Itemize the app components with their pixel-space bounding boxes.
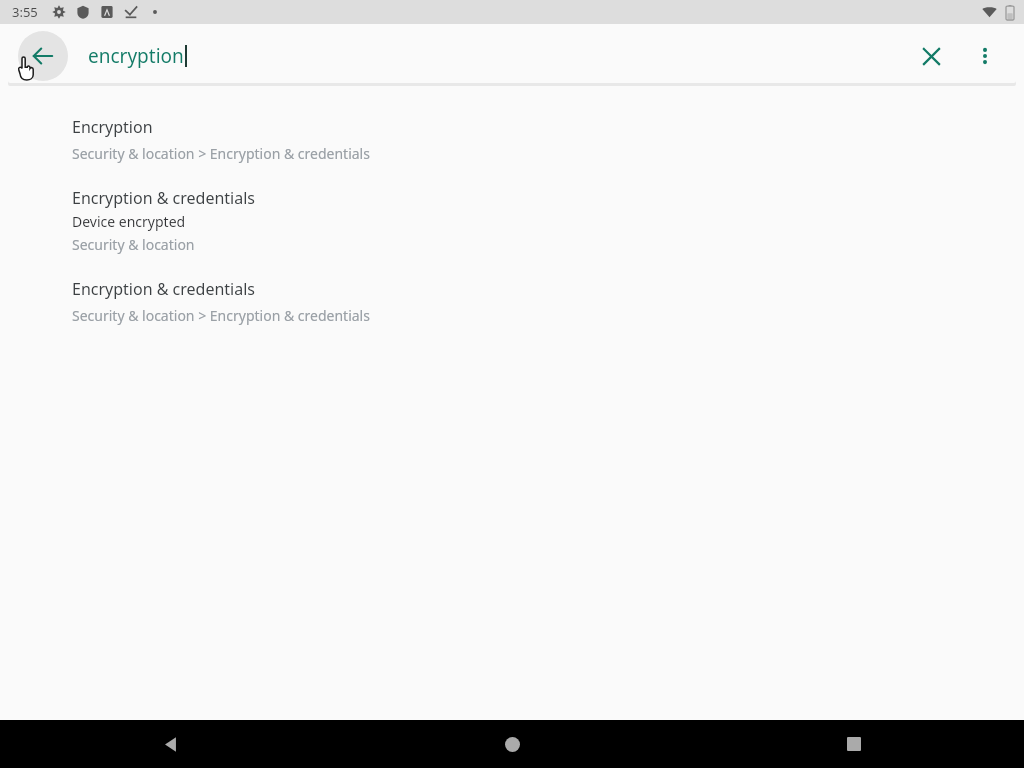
staticText: encryption — [88, 43, 184, 69]
staticText: Encryption — [72, 116, 153, 138]
button[interactable]: Encryption — [0, 110, 1024, 181]
staticText: Device encrypted — [72, 212, 186, 231]
button[interactable]: More options — [962, 33, 1008, 79]
staticText: 3:55 — [12, 3, 38, 21]
button[interactable]: Encryption & credentials — [0, 181, 1024, 272]
staticText: Security & location > Encryption & crede… — [72, 306, 370, 325]
staticText: Security & location — [72, 235, 195, 254]
button[interactable]: Home — [342, 720, 683, 768]
button[interactable]: Clear search — [908, 33, 954, 79]
button[interactable]: Encryption & credentials — [0, 272, 1024, 343]
button[interactable]: Navigate up — [18, 31, 68, 81]
staticText: Encryption & credentials — [72, 278, 255, 300]
button[interactable]: Back — [0, 720, 342, 768]
button[interactable]: Recent apps — [683, 720, 1024, 768]
staticText: Security & location > Encryption & crede… — [72, 144, 370, 163]
staticText: Encryption & credentials — [72, 187, 255, 209]
